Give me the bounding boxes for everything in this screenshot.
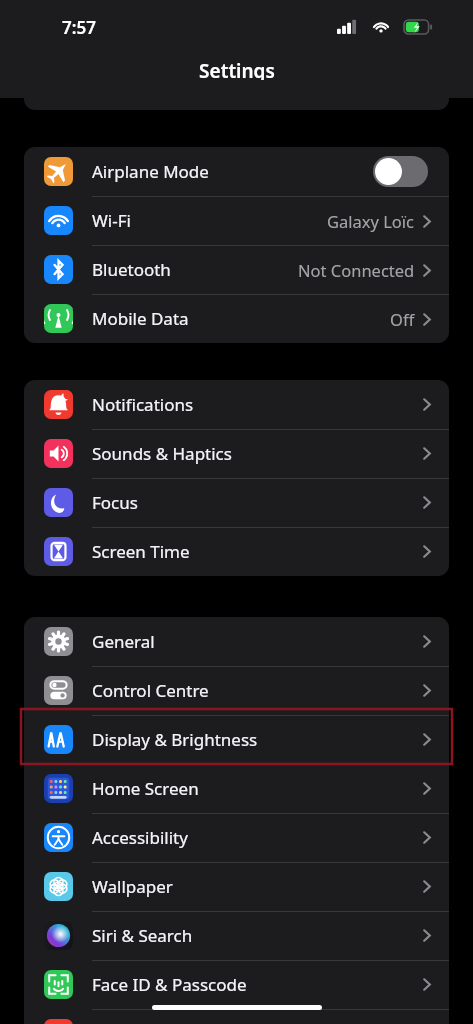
button[interactable]: Focus (24, 478, 449, 527)
button[interactable]: Wi-Fi (24, 196, 449, 245)
button[interactable]: Accessibility (24, 813, 449, 862)
button[interactable]: General (24, 617, 449, 666)
button[interactable]: Screen Time (24, 527, 449, 576)
button[interactable]: Face ID & Passcode (24, 960, 449, 1009)
staticText: Bluetooth (92, 258, 171, 281)
staticText: Home Screen (92, 777, 199, 800)
staticText: Accessibility (92, 826, 188, 849)
button[interactable]: Wallpaper (24, 862, 449, 911)
button[interactable] (24, 1009, 449, 1024)
button[interactable]: Notifications (24, 380, 449, 429)
staticText: Not Connected (298, 259, 415, 281)
staticText: Display & Brightness (92, 728, 258, 751)
button[interactable]: Airplane Mode (24, 147, 449, 196)
button[interactable]: Sounds & Haptics (24, 429, 449, 478)
staticText: Wallpaper (92, 875, 173, 898)
staticText: Mobile Data (92, 307, 189, 330)
staticText: Face ID & Passcode (92, 973, 247, 996)
staticText: Sounds & Haptics (92, 442, 232, 465)
button[interactable]: Mobile Data (24, 294, 449, 343)
staticText: Airplane Mode (92, 160, 209, 183)
button[interactable]: Siri & Search (24, 911, 449, 960)
staticText: Control Centre (92, 679, 209, 702)
staticText: Off (390, 308, 415, 330)
staticText: Settings (199, 58, 275, 84)
button[interactable]: Display & Brightness (24, 715, 449, 764)
button[interactable]: Airplane Mode toggle (373, 156, 428, 187)
staticText: 7:57 (62, 16, 96, 39)
staticText: Notifications (92, 393, 194, 416)
staticText: Screen Time (92, 540, 190, 563)
button[interactable]: Bluetooth (24, 245, 449, 294)
staticText: Siri & Search (92, 924, 193, 947)
staticText: Galaxy Loïc (327, 210, 415, 232)
button[interactable]: Home Screen (24, 764, 449, 813)
staticText: Focus (92, 491, 138, 514)
staticText: Wi-Fi (92, 209, 131, 232)
staticText: General (92, 630, 155, 653)
button[interactable]: Control Centre (24, 666, 449, 715)
